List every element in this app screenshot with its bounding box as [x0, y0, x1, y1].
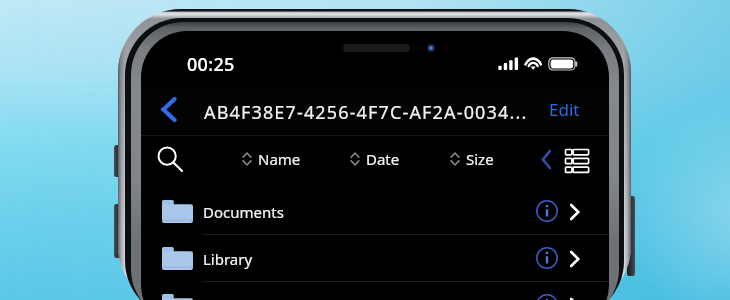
button[interactable]: Size	[445, 143, 500, 175]
staticText: Documents	[203, 202, 284, 222]
staticText: Date	[366, 149, 400, 169]
button[interactable]: Pictures	[141, 282, 609, 300]
button[interactable]: Info	[531, 242, 563, 274]
button[interactable]: List view	[558, 145, 596, 177]
button[interactable]: Info	[531, 195, 563, 227]
staticText: Edit	[549, 98, 580, 121]
button[interactable]: Documents	[141, 188, 609, 235]
button[interactable]: Name	[237, 143, 307, 175]
button[interactable]: Previous	[533, 144, 559, 174]
button[interactable]: Info	[531, 289, 563, 300]
button[interactable]: Search	[153, 142, 187, 176]
staticText: 00:25	[187, 52, 235, 77]
staticText: AB4F38E7-4256-4F7C-AF2A-0034...	[204, 100, 528, 125]
button[interactable]: Date	[345, 143, 406, 175]
button[interactable]: Edit	[541, 92, 587, 127]
staticText: Size	[466, 149, 494, 169]
button[interactable]: Library	[141, 235, 609, 282]
staticText: Library	[203, 249, 253, 269]
button[interactable]: Back	[153, 89, 185, 129]
staticText: Name	[258, 149, 301, 169]
